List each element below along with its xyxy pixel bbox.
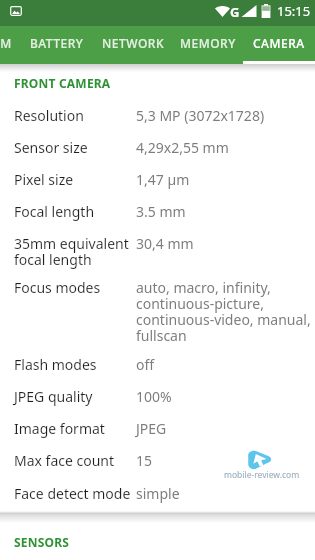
staticText: 5,3 MP (3072x1728): [136, 106, 265, 125]
staticText: Face detect mode: [14, 484, 136, 503]
staticText: 4,29x2,55 mm: [136, 138, 229, 157]
staticText: Focal length: [14, 202, 136, 221]
staticText: simple: [136, 484, 180, 503]
button[interactable]: MEMORY: [172, 26, 244, 60]
staticText: 35mm equivalent focal length: [14, 234, 136, 269]
staticText: 15: [136, 451, 153, 470]
staticText: 3.5 mm: [136, 202, 186, 221]
button[interactable]: SYSTEM: [0, 26, 25, 60]
button[interactable]: BATTERY: [20, 26, 94, 60]
staticText: off: [136, 355, 155, 374]
button[interactable]: Sensor size: [0, 130, 315, 162]
staticText: NETWORK: [102, 35, 164, 51]
staticText: mobile-review.com: [224, 469, 300, 481]
staticText: SENSORS: [14, 534, 70, 550]
button[interactable]: Flash modes: [0, 347, 315, 379]
staticText: JPEG quality: [14, 387, 136, 406]
staticText: MEMORY: [180, 35, 236, 51]
staticText: 100%: [136, 387, 172, 406]
button[interactable]: Face detect mode: [0, 476, 315, 508]
staticText: auto, macro, infinity, continuous-pictur…: [136, 278, 311, 345]
staticText: Pixel size: [14, 170, 136, 189]
staticText: Image format: [14, 419, 136, 438]
staticText: FRONT CAMERA: [14, 75, 111, 91]
button[interactable]: NETWORK: [96, 26, 170, 60]
other: Screenshot notification: [10, 5, 22, 17]
staticText: G: [230, 3, 240, 21]
staticText: Flash modes: [14, 355, 136, 374]
staticText: CAMERA: [253, 35, 305, 51]
staticText: 1,47 µm: [136, 170, 190, 189]
button[interactable]: Resolution: [0, 98, 315, 130]
button[interactable]: 35mm equivalent focal length: [0, 226, 315, 274]
button[interactable]: CAMERA: [243, 26, 315, 60]
staticText: 15:15: [277, 2, 311, 20]
staticText: SYSTEM: [0, 35, 12, 51]
button[interactable]: Image format: [0, 411, 315, 443]
button[interactable]: Focal length: [0, 194, 315, 226]
button[interactable]: Focus modes: [0, 270, 315, 350]
staticText: Max face count: [14, 451, 136, 470]
staticText: BATTERY: [30, 35, 84, 51]
button[interactable]: Max face count: [0, 443, 315, 475]
staticText: Sensor size: [14, 138, 136, 157]
staticText: JPEG: [136, 419, 167, 438]
staticText: Focus modes: [14, 278, 136, 297]
staticText: Resolution: [14, 106, 136, 125]
staticText: 30,4 mm: [136, 234, 194, 253]
button[interactable]: JPEG quality: [0, 379, 315, 411]
button[interactable]: Pixel size: [0, 162, 315, 194]
